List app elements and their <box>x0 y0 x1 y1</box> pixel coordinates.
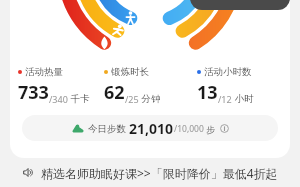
staticText: 733 <box>18 80 49 105</box>
staticText: /340 <box>49 93 68 105</box>
button[interactable]: 活动热量 <box>18 66 104 105</box>
staticText: 62 <box>104 80 125 105</box>
button[interactable]: Info <box>220 124 229 133</box>
staticText: /25 <box>125 93 139 105</box>
staticText: 锻炼时长 <box>111 66 149 78</box>
staticText: 千卡 <box>68 92 90 105</box>
staticText: 精选名师助眠好课>>「限时降价」最低4折起 <box>41 165 278 181</box>
staticText: /12 <box>218 93 232 105</box>
button[interactable]: 锻炼时长 <box>104 66 197 105</box>
staticText: /10,000 <box>174 123 204 135</box>
staticText: 活动热量 <box>25 66 63 78</box>
staticText: 13 <box>197 80 218 105</box>
button[interactable]: 活动小时数 <box>197 66 290 105</box>
button[interactable]: 精选名师助眠好课>>「限时降价」最低4折起 <box>0 158 300 187</box>
staticText: 今日步数 <box>88 123 126 135</box>
staticText: 活动小时数 <box>204 66 252 78</box>
staticText: 步 <box>204 123 216 135</box>
staticText: 小时 <box>232 92 254 105</box>
staticText: 分钟 <box>139 92 161 105</box>
button[interactable]: 今日步数 <box>22 115 278 141</box>
staticText: 21,010 <box>129 119 174 138</box>
